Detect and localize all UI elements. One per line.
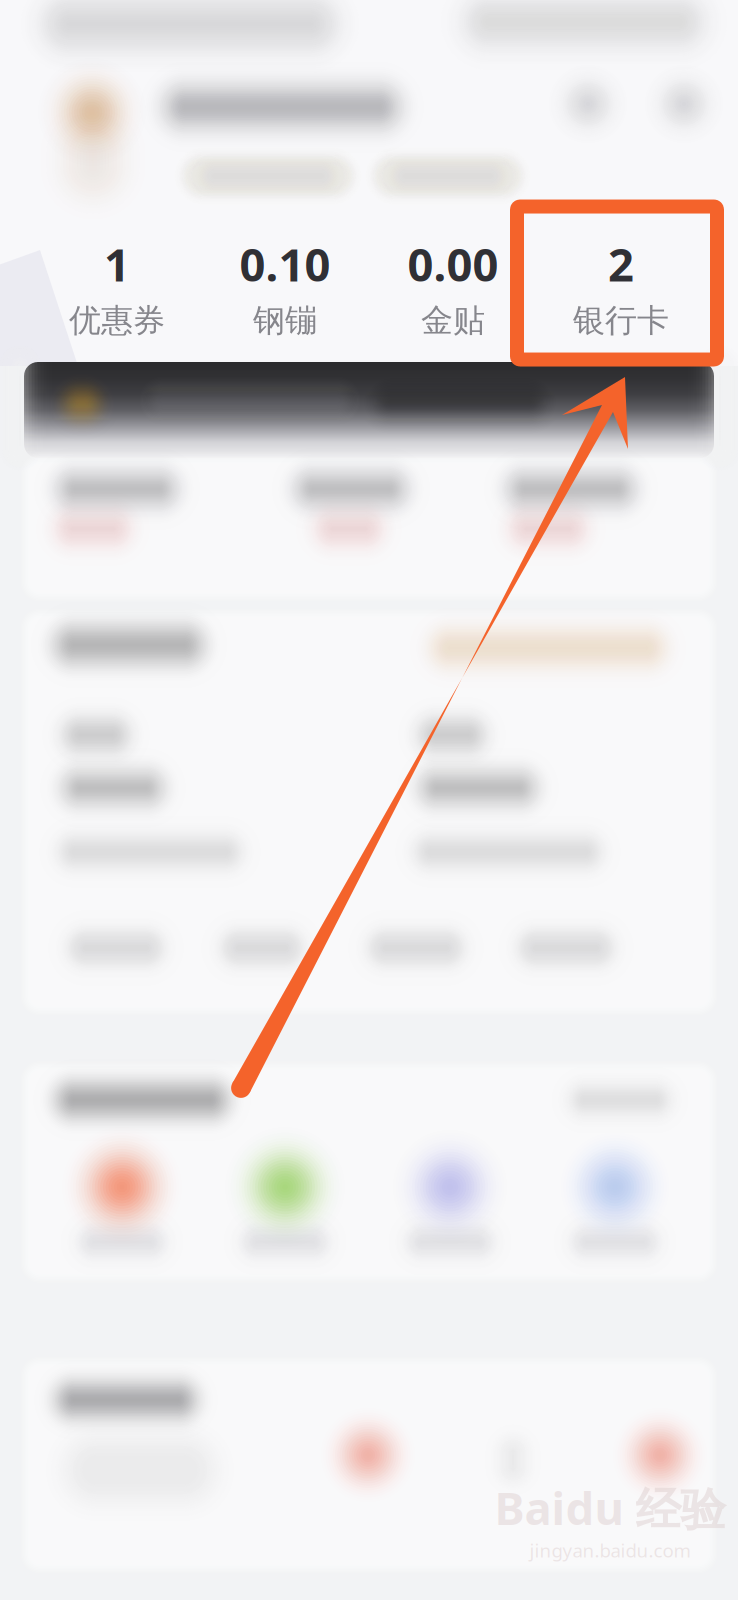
button[interactable]: 1 [33,232,201,342]
staticText: 金贴 [421,301,485,340]
button[interactable]: 2 [537,232,705,342]
staticText: jingyan.baidu.com [529,1538,690,1563]
staticText: Baidu 经验 [494,1477,725,1538]
staticText: 1 [104,234,130,294]
staticText: 0.00 [407,234,498,294]
staticText: 0.10 [239,234,330,294]
staticText: 银行卡 [573,301,669,340]
staticText: 优惠券 [69,301,165,340]
staticText: 2 [608,234,634,294]
button[interactable]: 0.00 [369,232,537,342]
button[interactable]: 0.10 [201,232,369,342]
staticText: 钢镚 [253,301,317,340]
